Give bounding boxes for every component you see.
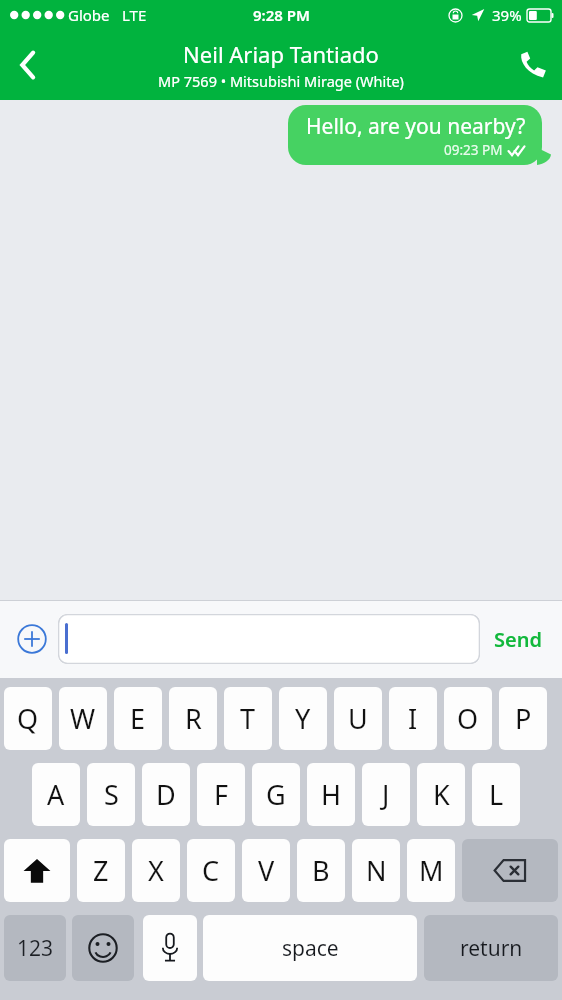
button[interactable]: F xyxy=(197,763,245,826)
staticText: E xyxy=(130,700,146,737)
button[interactable]: T xyxy=(224,687,272,750)
button[interactable]: Z xyxy=(77,839,125,902)
staticText: X xyxy=(148,852,164,889)
button[interactable]: Q xyxy=(4,687,52,750)
staticText: B xyxy=(312,852,330,889)
button[interactable]: S xyxy=(87,763,135,826)
staticText: J xyxy=(382,776,390,813)
button[interactable]: C xyxy=(187,839,235,902)
button[interactable]: G xyxy=(252,763,300,826)
staticText: U xyxy=(348,700,368,737)
staticText: Send xyxy=(494,626,542,653)
button[interactable]: N xyxy=(352,839,400,902)
staticText: T xyxy=(240,700,256,737)
button[interactable]: Y xyxy=(279,687,327,750)
button[interactable]: Backspace xyxy=(462,839,558,902)
staticText: A xyxy=(47,776,65,813)
staticText: D xyxy=(156,776,176,813)
button[interactable]: M xyxy=(407,839,455,902)
button[interactable]: H xyxy=(307,763,355,826)
button[interactable]: return xyxy=(424,915,558,981)
button[interactable]: O xyxy=(444,687,492,750)
staticText: Globe xyxy=(68,5,110,25)
button[interactable]: Shift xyxy=(4,839,70,902)
button[interactable]: 123 xyxy=(4,915,66,981)
button[interactable]: Emoji xyxy=(72,915,134,981)
button[interactable]: Send xyxy=(486,626,550,653)
button[interactable]: P xyxy=(499,687,547,750)
staticText: L xyxy=(489,776,504,813)
staticText: K xyxy=(433,776,450,813)
staticText: V xyxy=(258,852,275,889)
button[interactable]: E xyxy=(114,687,162,750)
staticText: 09:23 PM xyxy=(444,141,503,159)
staticText: 9:28 PM xyxy=(253,5,310,25)
staticText: W xyxy=(70,700,96,737)
button[interactable]: V xyxy=(242,839,290,902)
button[interactable]: Call xyxy=(504,36,562,94)
button[interactable]: space xyxy=(203,915,417,981)
button[interactable]: A xyxy=(32,763,80,826)
staticText: O xyxy=(457,700,479,737)
button[interactable]: J xyxy=(362,763,410,826)
staticText: C xyxy=(202,852,220,889)
button[interactable]: I xyxy=(389,687,437,750)
staticText: Q xyxy=(17,700,39,737)
staticText: Z xyxy=(93,852,109,889)
button[interactable]: D xyxy=(142,763,190,826)
staticText: M xyxy=(419,852,444,889)
staticText: R xyxy=(185,700,202,737)
staticText: I xyxy=(408,700,418,737)
staticText: 39% xyxy=(492,5,522,25)
button[interactable]: R xyxy=(169,687,217,750)
staticText: G xyxy=(266,776,286,813)
button[interactable]: W xyxy=(59,687,107,750)
staticText: LTE xyxy=(122,5,147,25)
staticText: N xyxy=(366,852,387,889)
staticText: space xyxy=(282,934,339,963)
staticText: Neil Ariap Tantiado xyxy=(183,39,379,69)
staticText: F xyxy=(214,776,229,813)
button[interactable]: K xyxy=(417,763,465,826)
button[interactable]: L xyxy=(472,763,520,826)
button[interactable]: U xyxy=(334,687,382,750)
staticText: S xyxy=(104,776,119,813)
button[interactable]: Hello, are you nearby? xyxy=(288,105,542,165)
staticText: H xyxy=(321,776,342,813)
button[interactable]: Back xyxy=(0,37,56,93)
staticText: MP 7569 • Mitsubishi Mirage (White) xyxy=(158,71,404,91)
button[interactable]: Add attachment xyxy=(12,619,52,659)
button[interactable] xyxy=(58,614,480,664)
staticText: return xyxy=(460,934,523,963)
button[interactable]: B xyxy=(297,839,345,902)
staticText: 123 xyxy=(17,934,54,963)
staticText: Y xyxy=(295,700,311,737)
staticText: Hello, are you nearby? xyxy=(306,112,526,141)
button[interactable]: X xyxy=(132,839,180,902)
button[interactable]: Voice input xyxy=(143,915,197,981)
staticText: P xyxy=(515,700,532,737)
